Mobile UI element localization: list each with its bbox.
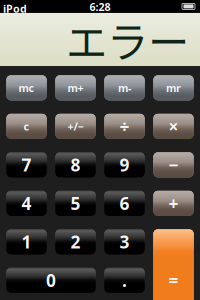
staticText: 0 bbox=[46, 269, 56, 292]
staticText: mr bbox=[166, 81, 181, 95]
button[interactable]: Plus minus bbox=[55, 114, 95, 139]
button[interactable]: Memory subtract bbox=[104, 75, 144, 100]
button[interactable]: Add bbox=[153, 191, 193, 216]
button[interactable]: 6 bbox=[104, 191, 144, 216]
staticText: 1 bbox=[21, 230, 31, 253]
button[interactable]: 8 bbox=[55, 152, 95, 177]
button[interactable]: Divide bbox=[104, 114, 144, 139]
staticText: 3 bbox=[119, 230, 129, 253]
staticText: + bbox=[168, 192, 178, 215]
staticText: 6:28 bbox=[89, 0, 110, 14]
button[interactable]: 7 bbox=[6, 152, 46, 177]
staticText: m+ bbox=[67, 81, 83, 95]
staticText: +/− bbox=[67, 119, 83, 133]
button[interactable]: 0 bbox=[6, 268, 95, 293]
staticText: c bbox=[23, 119, 29, 133]
button[interactable]: Memory clear bbox=[6, 75, 46, 100]
button[interactable]: 3 bbox=[104, 229, 144, 254]
button[interactable]: 1 bbox=[6, 229, 46, 254]
button[interactable]: 2 bbox=[55, 229, 95, 254]
staticText: 2 bbox=[70, 230, 80, 253]
button[interactable]: 4 bbox=[6, 191, 46, 216]
staticText: 7 bbox=[21, 153, 31, 176]
staticText: 5 bbox=[70, 192, 80, 215]
staticText: iPod bbox=[3, 1, 27, 16]
staticText: 4 bbox=[21, 192, 31, 215]
staticText: ÷ bbox=[119, 115, 129, 138]
staticText: m- bbox=[118, 81, 131, 95]
button[interactable]: Memory add bbox=[55, 75, 95, 100]
staticText: 9 bbox=[119, 153, 129, 176]
button[interactable]: Subtract bbox=[153, 152, 193, 177]
staticText: 6 bbox=[119, 192, 129, 215]
button[interactable]: Multiply bbox=[153, 114, 193, 139]
staticText: mc bbox=[18, 81, 34, 95]
button[interactable]: 5 bbox=[55, 191, 95, 216]
button[interactable]: Decimal point bbox=[104, 268, 144, 293]
staticText: − bbox=[168, 153, 178, 176]
button[interactable]: Equals bbox=[153, 229, 193, 300]
staticText: 8 bbox=[70, 153, 80, 176]
staticText: × bbox=[168, 115, 178, 138]
staticText: = bbox=[168, 269, 178, 292]
button[interactable]: Memory recall bbox=[153, 75, 193, 100]
staticText: . bbox=[122, 269, 127, 292]
button[interactable]: 9 bbox=[104, 152, 144, 177]
staticText: エラー bbox=[66, 10, 189, 69]
button[interactable]: Clear bbox=[6, 114, 46, 139]
